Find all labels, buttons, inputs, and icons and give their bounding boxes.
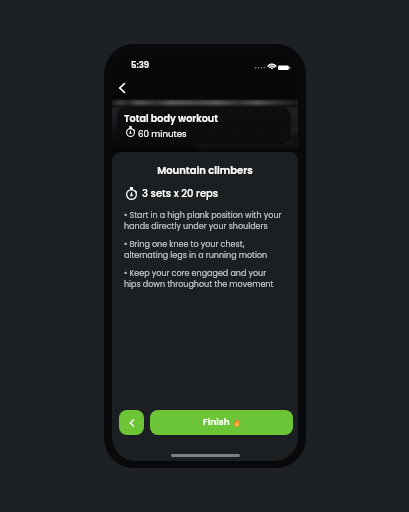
button[interactable]: Back [112, 79, 131, 96]
staticText: • Bring one knee to your chest, alternat… [124, 239, 268, 261]
staticText: Mountain climbers [112, 163, 298, 177]
staticText: Total body workout [124, 112, 218, 125]
staticText: 60 minutes [138, 128, 187, 140]
staticText: • Start in a high plank position with yo… [124, 210, 282, 232]
staticText: Finish [203, 416, 230, 429]
staticText: • Keep your core engaged and your hips d… [124, 268, 274, 290]
staticText: 5:39 [131, 59, 150, 71]
button[interactable]: Finish [150, 410, 293, 435]
staticText: 3 sets x 20 reps [142, 186, 219, 200]
button[interactable]: Previous exercise [119, 410, 144, 435]
